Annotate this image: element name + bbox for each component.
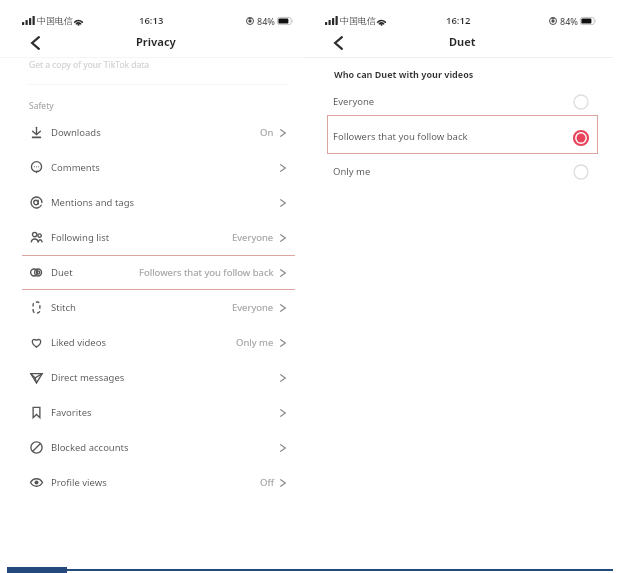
- staticText: Followers that you follow back: [333, 130, 468, 143]
- button[interactable]: Blocked accounts: [0, 430, 303, 465]
- staticText: Followers that you follow back: [139, 266, 274, 279]
- staticText: Get a copy of your TikTok data: [29, 59, 150, 71]
- staticText: Everyone: [232, 301, 274, 314]
- staticText: Downloads: [51, 126, 101, 139]
- staticText: Off: [260, 476, 274, 489]
- staticText: Direct messages: [51, 371, 125, 384]
- staticText: Profile views: [51, 476, 107, 489]
- button[interactable]: Stitch: [0, 290, 303, 325]
- button[interactable]: Favorites: [0, 395, 303, 430]
- staticText: Everyone: [232, 231, 274, 244]
- staticText: 中国电信: [37, 15, 73, 26]
- staticText: Blocked accounts: [51, 441, 129, 454]
- button[interactable]: Duet: [0, 255, 303, 290]
- staticText: Mentions and tags: [51, 196, 135, 209]
- staticText: Privacy: [136, 34, 176, 49]
- staticText: Who can Duet with your videos: [334, 68, 474, 80]
- button[interactable]: Liked videos: [0, 325, 303, 360]
- staticText: Duet: [51, 266, 73, 279]
- staticText: Only me: [236, 336, 274, 349]
- button[interactable]: Following list: [0, 220, 303, 255]
- button[interactable]: Back: [24, 32, 46, 54]
- staticText: Only me: [333, 165, 371, 178]
- button[interactable]: Back: [327, 32, 349, 54]
- button[interactable]: Profile views: [0, 465, 303, 500]
- staticText: Liked videos: [51, 336, 106, 349]
- staticText: Favorites: [51, 406, 92, 419]
- staticText: Comments: [51, 161, 100, 174]
- staticText: Everyone: [333, 95, 375, 108]
- staticText: Stitch: [51, 301, 76, 314]
- button[interactable]: Direct messages: [0, 360, 303, 395]
- button[interactable]: Downloads: [0, 115, 303, 150]
- staticText: Following list: [51, 231, 110, 244]
- staticText: Duet: [449, 34, 476, 49]
- button[interactable]: Everyone: [303, 84, 613, 119]
- button[interactable]: Comments: [0, 150, 303, 185]
- staticText: 16:13: [139, 14, 164, 27]
- staticText: 中国电信: [340, 15, 376, 26]
- button[interactable]: Followers that you follow back: [303, 115, 613, 154]
- staticText: Safety: [29, 100, 54, 112]
- staticText: On: [260, 126, 274, 139]
- staticText: 84%: [560, 15, 578, 27]
- staticText: 84%: [257, 15, 275, 27]
- staticText: 16:12: [446, 14, 471, 27]
- button[interactable]: Mentions and tags: [0, 185, 303, 220]
- button[interactable]: Only me: [303, 154, 613, 189]
